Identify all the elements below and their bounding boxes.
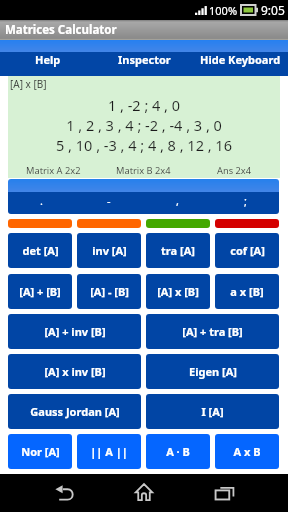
staticText: [A] + tra [B] bbox=[182, 324, 243, 339]
button[interactable]: inv [A] bbox=[77, 233, 141, 268]
staticText: Eigen [A] bbox=[189, 364, 237, 379]
staticText: - bbox=[107, 193, 111, 208]
staticText: Ans 2x4 bbox=[217, 164, 252, 177]
button[interactable]: . bbox=[8, 179, 75, 214]
staticText: a x [B] bbox=[230, 284, 264, 299]
button[interactable]: cof [A] bbox=[215, 233, 279, 268]
staticText: Hide Keyboard bbox=[200, 52, 281, 67]
button[interactable]: - bbox=[75, 179, 143, 214]
staticText: Matrix A 2x2 bbox=[26, 164, 81, 177]
staticText: [A] + inv [B] bbox=[44, 324, 106, 339]
button[interactable]: [A] x inv [B] bbox=[8, 354, 141, 389]
staticText: Nor [A] bbox=[21, 444, 60, 459]
staticText: det [A] bbox=[22, 243, 59, 258]
staticText: Matrix B 2x4 bbox=[116, 164, 171, 177]
button[interactable]: [A] + tra [B] bbox=[146, 314, 279, 349]
staticText: Matrices Calculator bbox=[5, 22, 117, 38]
staticText: [A] x [B] bbox=[157, 284, 199, 299]
button[interactable] bbox=[8, 219, 72, 228]
staticText: 9:05 bbox=[261, 2, 285, 18]
staticText: . bbox=[40, 193, 43, 208]
button[interactable]: Hide Keyboard bbox=[192, 40, 288, 76]
staticText: cof [A] bbox=[230, 243, 265, 258]
staticText: 1 , 2 , 3 , 4 ; -2 , -4 , 3 , 0 bbox=[8, 115, 280, 135]
button[interactable]: A · B bbox=[146, 434, 210, 469]
button[interactable]: , bbox=[143, 179, 211, 214]
button[interactable]: [A] x [B] bbox=[146, 274, 210, 309]
staticText: || A || bbox=[90, 444, 128, 459]
staticText: [A] x [B] bbox=[10, 77, 47, 91]
button[interactable]: Recent apps bbox=[192, 480, 256, 506]
staticText: ; bbox=[244, 193, 247, 208]
button[interactable]: Nor [A] bbox=[8, 434, 72, 469]
button[interactable]: a x [B] bbox=[215, 274, 279, 309]
staticText: 5 , 10 , -3 , 4 ; 4 , 8 , 12 , 16 bbox=[8, 135, 280, 155]
button[interactable] bbox=[215, 219, 279, 228]
staticText: Gauss Jordan [A] bbox=[30, 404, 120, 419]
button[interactable]: I [A] bbox=[146, 394, 279, 429]
button[interactable]: Home bbox=[112, 479, 176, 505]
staticText: , bbox=[176, 193, 179, 208]
button[interactable] bbox=[146, 219, 210, 228]
staticText: tra [A] bbox=[161, 243, 195, 258]
button[interactable]: A x B bbox=[215, 434, 279, 469]
staticText: [A] - [B] bbox=[90, 284, 129, 299]
staticText: [A] x inv [B] bbox=[44, 364, 106, 379]
staticText: 1 , -2 ; 4 , 0 bbox=[8, 95, 280, 115]
button[interactable]: Back bbox=[32, 481, 96, 507]
staticText: I [A] bbox=[201, 404, 224, 419]
button[interactable]: [A] - [B] bbox=[77, 274, 141, 309]
button[interactable]: [A] + [B] bbox=[8, 274, 72, 309]
button[interactable]: Gauss Jordan [A] bbox=[8, 394, 141, 429]
staticText: Inspector bbox=[118, 52, 171, 67]
button[interactable]: det [A] bbox=[8, 233, 72, 268]
staticText: A · B bbox=[166, 444, 190, 459]
button[interactable]: Inspector bbox=[96, 40, 192, 76]
staticText: A x B bbox=[233, 444, 261, 459]
button[interactable] bbox=[77, 219, 141, 228]
button[interactable]: [A] + inv [B] bbox=[8, 314, 141, 349]
staticText: inv [A] bbox=[92, 243, 127, 258]
button[interactable]: Help bbox=[0, 40, 96, 76]
button[interactable]: tra [A] bbox=[146, 233, 210, 268]
button[interactable]: Eigen [A] bbox=[146, 354, 279, 389]
staticText: Help bbox=[35, 52, 61, 67]
staticText: 100% bbox=[209, 3, 238, 18]
staticText: [A] + [B] bbox=[19, 284, 61, 299]
button[interactable]: || A || bbox=[77, 434, 141, 469]
button[interactable]: ; bbox=[211, 179, 279, 214]
